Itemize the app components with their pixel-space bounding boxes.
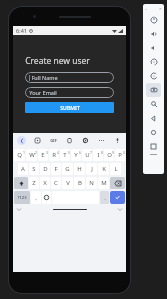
button[interactable]: More options [97, 136, 106, 145]
button[interactable]: Q [14, 149, 25, 161]
staticText: SUBMIT [60, 104, 80, 111]
button[interactable]: N [86, 177, 97, 189]
button[interactable]: Your Email [25, 87, 114, 98]
staticText: R [52, 151, 56, 159]
button[interactable]: E [38, 149, 48, 161]
button[interactable]: S [29, 163, 39, 175]
button[interactable]: H [74, 163, 85, 175]
staticText: 2 [35, 150, 37, 155]
button[interactable]: J [86, 163, 97, 175]
button[interactable]: D [40, 163, 50, 175]
staticText: ?123 [17, 195, 27, 201]
staticText: L [114, 165, 118, 173]
button[interactable]: R [49, 149, 59, 161]
button[interactable]: L [110, 163, 121, 175]
staticText: Y [74, 151, 78, 159]
staticText: C [54, 179, 58, 187]
staticText: × [159, 6, 162, 11]
button[interactable]: M [98, 177, 109, 189]
button[interactable]: P [115, 149, 125, 161]
staticText: K [102, 165, 106, 173]
button[interactable]: W [26, 149, 37, 161]
staticText: GIF [50, 138, 57, 143]
button[interactable]: Z [29, 177, 39, 189]
button[interactable]: I [93, 149, 103, 161]
button[interactable]: O [104, 149, 114, 161]
button[interactable]: K [98, 163, 109, 175]
staticText: M [101, 179, 107, 187]
staticText: 8 [101, 150, 103, 155]
button[interactable]: Volume down [146, 41, 161, 55]
button[interactable]: ?123 [14, 191, 30, 204]
button[interactable]: A [18, 163, 28, 175]
staticText: Q [17, 151, 22, 159]
button[interactable]: G [62, 163, 73, 175]
button[interactable]: Back [17, 136, 26, 145]
button[interactable]: Rotate left [146, 55, 161, 69]
staticText: U [85, 151, 90, 159]
staticText: X [43, 179, 47, 187]
button[interactable]: U [82, 149, 92, 161]
button[interactable]: X [40, 177, 50, 189]
staticText: , [35, 194, 37, 202]
staticText: Z [32, 179, 36, 187]
button[interactable]: Voice input [113, 136, 122, 145]
staticText: B [78, 179, 82, 187]
staticText: V [66, 179, 70, 187]
staticText: P [118, 151, 122, 159]
button[interactable]: Clipboard [65, 136, 74, 145]
button[interactable]: . [100, 191, 109, 204]
staticText: D [43, 165, 48, 173]
staticText: – [145, 6, 147, 11]
staticText: J [91, 165, 93, 173]
staticText: F [54, 165, 58, 173]
button[interactable]: Volume up [146, 27, 161, 41]
button[interactable]: Enter [110, 191, 125, 204]
staticText: S [32, 165, 36, 173]
button[interactable]: T [60, 149, 70, 161]
staticText: 1 [23, 150, 25, 155]
button[interactable]: Emoji [42, 191, 51, 204]
button[interactable]: Power [146, 13, 161, 27]
staticText: 3 [46, 150, 48, 155]
button[interactable]: Stickers [33, 136, 42, 145]
staticText: Your Email [29, 89, 57, 96]
staticText: 4 [57, 150, 59, 155]
staticText: W [29, 151, 35, 159]
staticText: T [63, 151, 67, 159]
button[interactable]: Back [146, 111, 161, 125]
staticText: 6 [79, 150, 81, 155]
staticText: 7 [90, 150, 92, 155]
button[interactable]: Y [71, 149, 81, 161]
staticText: G [65, 165, 70, 173]
staticText: H [77, 165, 82, 173]
button[interactable]: GIF [49, 136, 58, 145]
button[interactable]: Home [146, 125, 161, 139]
staticText: E [41, 151, 45, 159]
button[interactable]: Rotate right [146, 69, 161, 83]
staticText: I [97, 151, 100, 159]
button[interactable]: C [51, 177, 61, 189]
staticText: 5 [68, 150, 70, 155]
staticText: O [107, 151, 112, 159]
button[interactable]: F [51, 163, 61, 175]
button[interactable]: SUBMIT [25, 102, 114, 113]
button[interactable]: Screenshot [146, 83, 161, 97]
staticText: 0 [123, 150, 125, 155]
button[interactable]: Settings [81, 136, 90, 145]
staticText: A [21, 165, 25, 173]
button[interactable]: Overview [146, 139, 161, 153]
staticText: 9 [112, 150, 114, 155]
staticText: Create new user [25, 55, 90, 67]
staticText: 6:41 [16, 27, 27, 34]
button[interactable]: V [62, 177, 73, 189]
staticText: N [89, 179, 94, 187]
button[interactable]: B [74, 177, 85, 189]
button[interactable]: , [31, 191, 41, 204]
button[interactable]: Zoom [146, 97, 161, 111]
button[interactable]: Backspace [110, 177, 125, 189]
button[interactable]: Shift [14, 177, 28, 189]
button[interactable]: Full Name [25, 72, 114, 83]
staticText: Full Name [31, 74, 58, 81]
